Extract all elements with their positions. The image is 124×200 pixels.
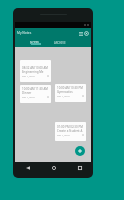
staticText: Dec 1, 2018 bbox=[22, 96, 35, 99]
staticText: Dec 1, 2018 bbox=[57, 134, 70, 137]
staticText: Engineering Me bbox=[22, 70, 44, 74]
button[interactable]: NOTES bbox=[21, 38, 47, 47]
staticText: 10:00 AM 11:30 AM bbox=[22, 87, 48, 91]
staticText: 10:00 AM 10:30 PM bbox=[57, 86, 83, 90]
button[interactable]: 10:00 AM 10:30 PM bbox=[55, 84, 86, 102]
button[interactable]: 01:00 PM 02:30 PM bbox=[55, 122, 86, 141]
button[interactable]: Settings bbox=[84, 31, 89, 36]
staticText: Dinner bbox=[22, 91, 32, 95]
staticText: Create a Student A bbox=[57, 129, 83, 133]
staticText: NOTES bbox=[30, 41, 39, 45]
button[interactable]: Recents bbox=[76, 164, 84, 172]
button[interactable]: List view bbox=[78, 31, 83, 36]
staticText: Gymnastics bbox=[57, 90, 73, 94]
staticText: My Notes bbox=[17, 31, 32, 35]
button[interactable]: 08:32 AM 10:00 AM bbox=[20, 60, 51, 82]
staticText: 01:00 PM 02:30 PM bbox=[57, 125, 83, 129]
button[interactable]: Back bbox=[24, 164, 32, 172]
button[interactable]: Add note bbox=[75, 146, 85, 156]
staticText: Dec 1, 2018 bbox=[22, 75, 35, 78]
button[interactable]: 10:00 AM 11:30 AM bbox=[20, 85, 51, 103]
staticText: ARCHIVE bbox=[54, 41, 66, 45]
staticText: 08:32 AM 10:00 AM bbox=[22, 66, 48, 70]
staticText: Dec 1, 2018 bbox=[57, 95, 70, 98]
button[interactable]: Home bbox=[50, 164, 58, 172]
button[interactable]: ARCHIVE bbox=[47, 38, 73, 47]
